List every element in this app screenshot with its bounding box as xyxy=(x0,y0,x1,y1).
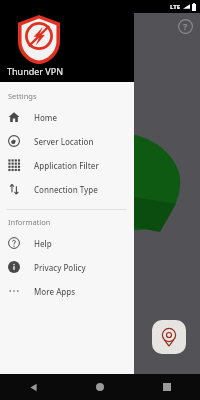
staticText: Information xyxy=(8,217,51,227)
staticText: Application Filter xyxy=(34,160,99,171)
button[interactable]: Home xyxy=(0,105,134,129)
button[interactable]: Help xyxy=(174,15,196,37)
button[interactable]: More Apps xyxy=(0,279,134,303)
button[interactable]: Home xyxy=(66,374,133,400)
staticText: ? xyxy=(183,20,188,32)
button[interactable]: Recent apps xyxy=(133,374,200,400)
button[interactable]: Application Filter xyxy=(0,153,134,177)
button[interactable]: Server Location xyxy=(0,129,134,153)
staticText: Connection Type xyxy=(34,184,98,195)
staticText: Server Location xyxy=(34,136,94,147)
button[interactable]: Help xyxy=(0,231,134,255)
staticText: Help xyxy=(34,238,52,249)
button[interactable]: Connection Type xyxy=(0,177,134,201)
button[interactable]: Privacy Policy xyxy=(0,255,134,279)
staticText: Settings xyxy=(8,91,37,101)
staticText: LTE xyxy=(170,3,181,11)
staticText: Thunder VPN xyxy=(7,65,64,77)
button[interactable]: Current location xyxy=(152,320,186,354)
button[interactable]: Back xyxy=(0,374,66,400)
staticText: More Apps xyxy=(34,286,76,297)
staticText: Home xyxy=(34,112,58,123)
staticText: Privacy Policy xyxy=(34,262,86,273)
